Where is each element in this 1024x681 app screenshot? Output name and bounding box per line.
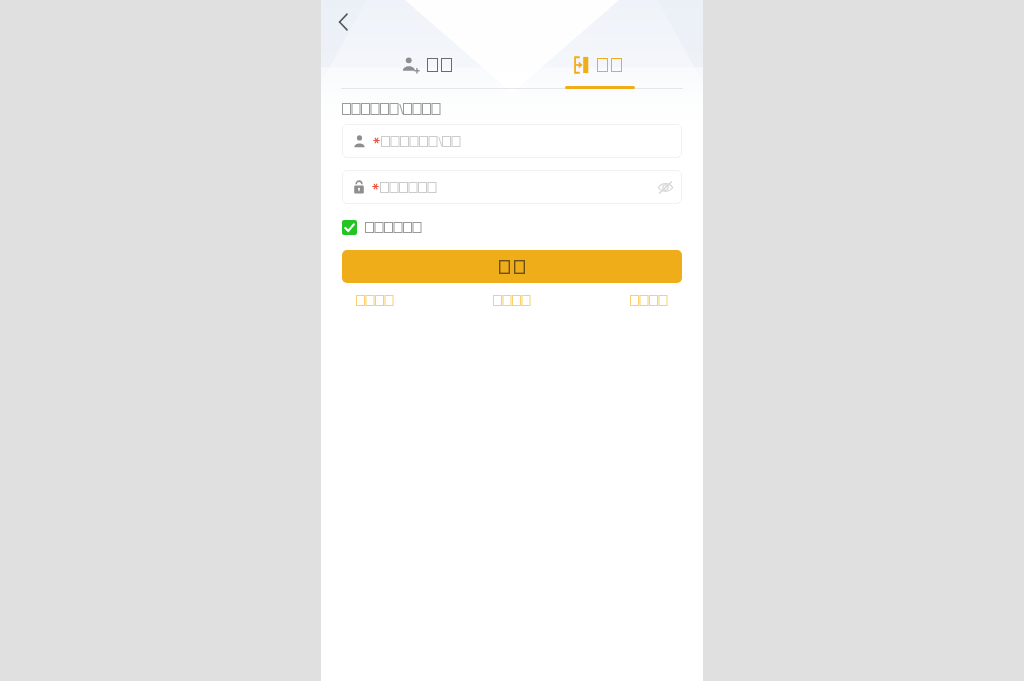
button[interactable]: Register tab bbox=[341, 44, 512, 86]
button[interactable] bbox=[338, 216, 422, 239]
button[interactable]: Login tab bbox=[512, 44, 683, 86]
button[interactable] bbox=[342, 124, 682, 158]
button[interactable]: Show password bbox=[648, 170, 682, 204]
button[interactable] bbox=[342, 250, 682, 283]
button[interactable] bbox=[479, 293, 545, 308]
button[interactable] bbox=[342, 293, 408, 308]
button[interactable]: Show password bbox=[342, 170, 682, 204]
button[interactable] bbox=[616, 293, 682, 308]
button[interactable]: Back bbox=[321, 0, 365, 44]
